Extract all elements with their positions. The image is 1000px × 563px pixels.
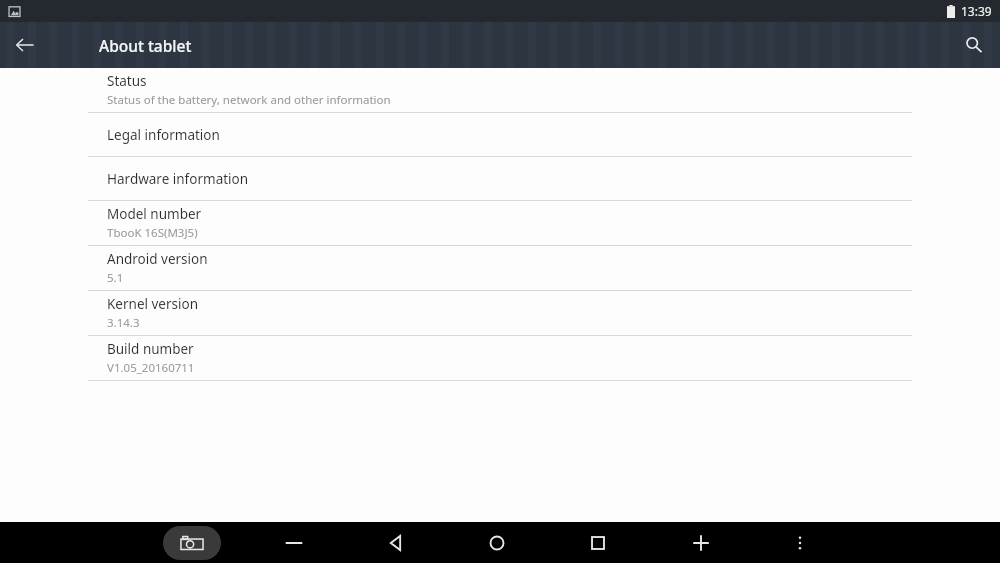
staticText: 5.1 xyxy=(107,270,124,286)
button[interactable]: Model number xyxy=(0,201,1000,245)
staticText: Build number xyxy=(107,340,194,358)
button[interactable]: More options xyxy=(779,522,821,563)
button[interactable]: Back xyxy=(0,22,50,68)
button[interactable]: Volume down xyxy=(273,522,315,563)
button[interactable]: Build number xyxy=(0,336,1000,380)
button[interactable]: Search xyxy=(948,22,1000,68)
staticText: Legal information xyxy=(107,126,220,144)
staticText: 3.14.3 xyxy=(107,315,140,331)
button[interactable]: Back xyxy=(375,522,417,563)
staticText: Kernel version xyxy=(107,295,199,313)
button[interactable]: Hardware information xyxy=(0,157,1000,200)
staticText: V1.05_20160711 xyxy=(107,360,195,376)
staticText: 13:39 xyxy=(961,3,992,19)
staticText: About tablet xyxy=(99,35,192,56)
button[interactable]: Kernel version xyxy=(0,291,1000,335)
staticText: TbooK 16S(M3J5) xyxy=(107,225,198,241)
button[interactable]: Home xyxy=(476,522,518,563)
button[interactable]: Screenshot xyxy=(163,526,221,560)
button[interactable]: Status xyxy=(0,68,1000,112)
button[interactable]: Legal information xyxy=(0,113,1000,156)
button[interactable]: Volume up xyxy=(680,522,722,563)
staticText: Status xyxy=(107,72,147,90)
staticText: Status of the battery, network and other… xyxy=(107,92,391,108)
button[interactable]: Recent apps xyxy=(577,522,619,563)
staticText: Model number xyxy=(107,205,202,223)
staticText: Android version xyxy=(107,250,208,268)
staticText: Hardware information xyxy=(107,170,249,188)
button[interactable]: Android version xyxy=(0,246,1000,290)
